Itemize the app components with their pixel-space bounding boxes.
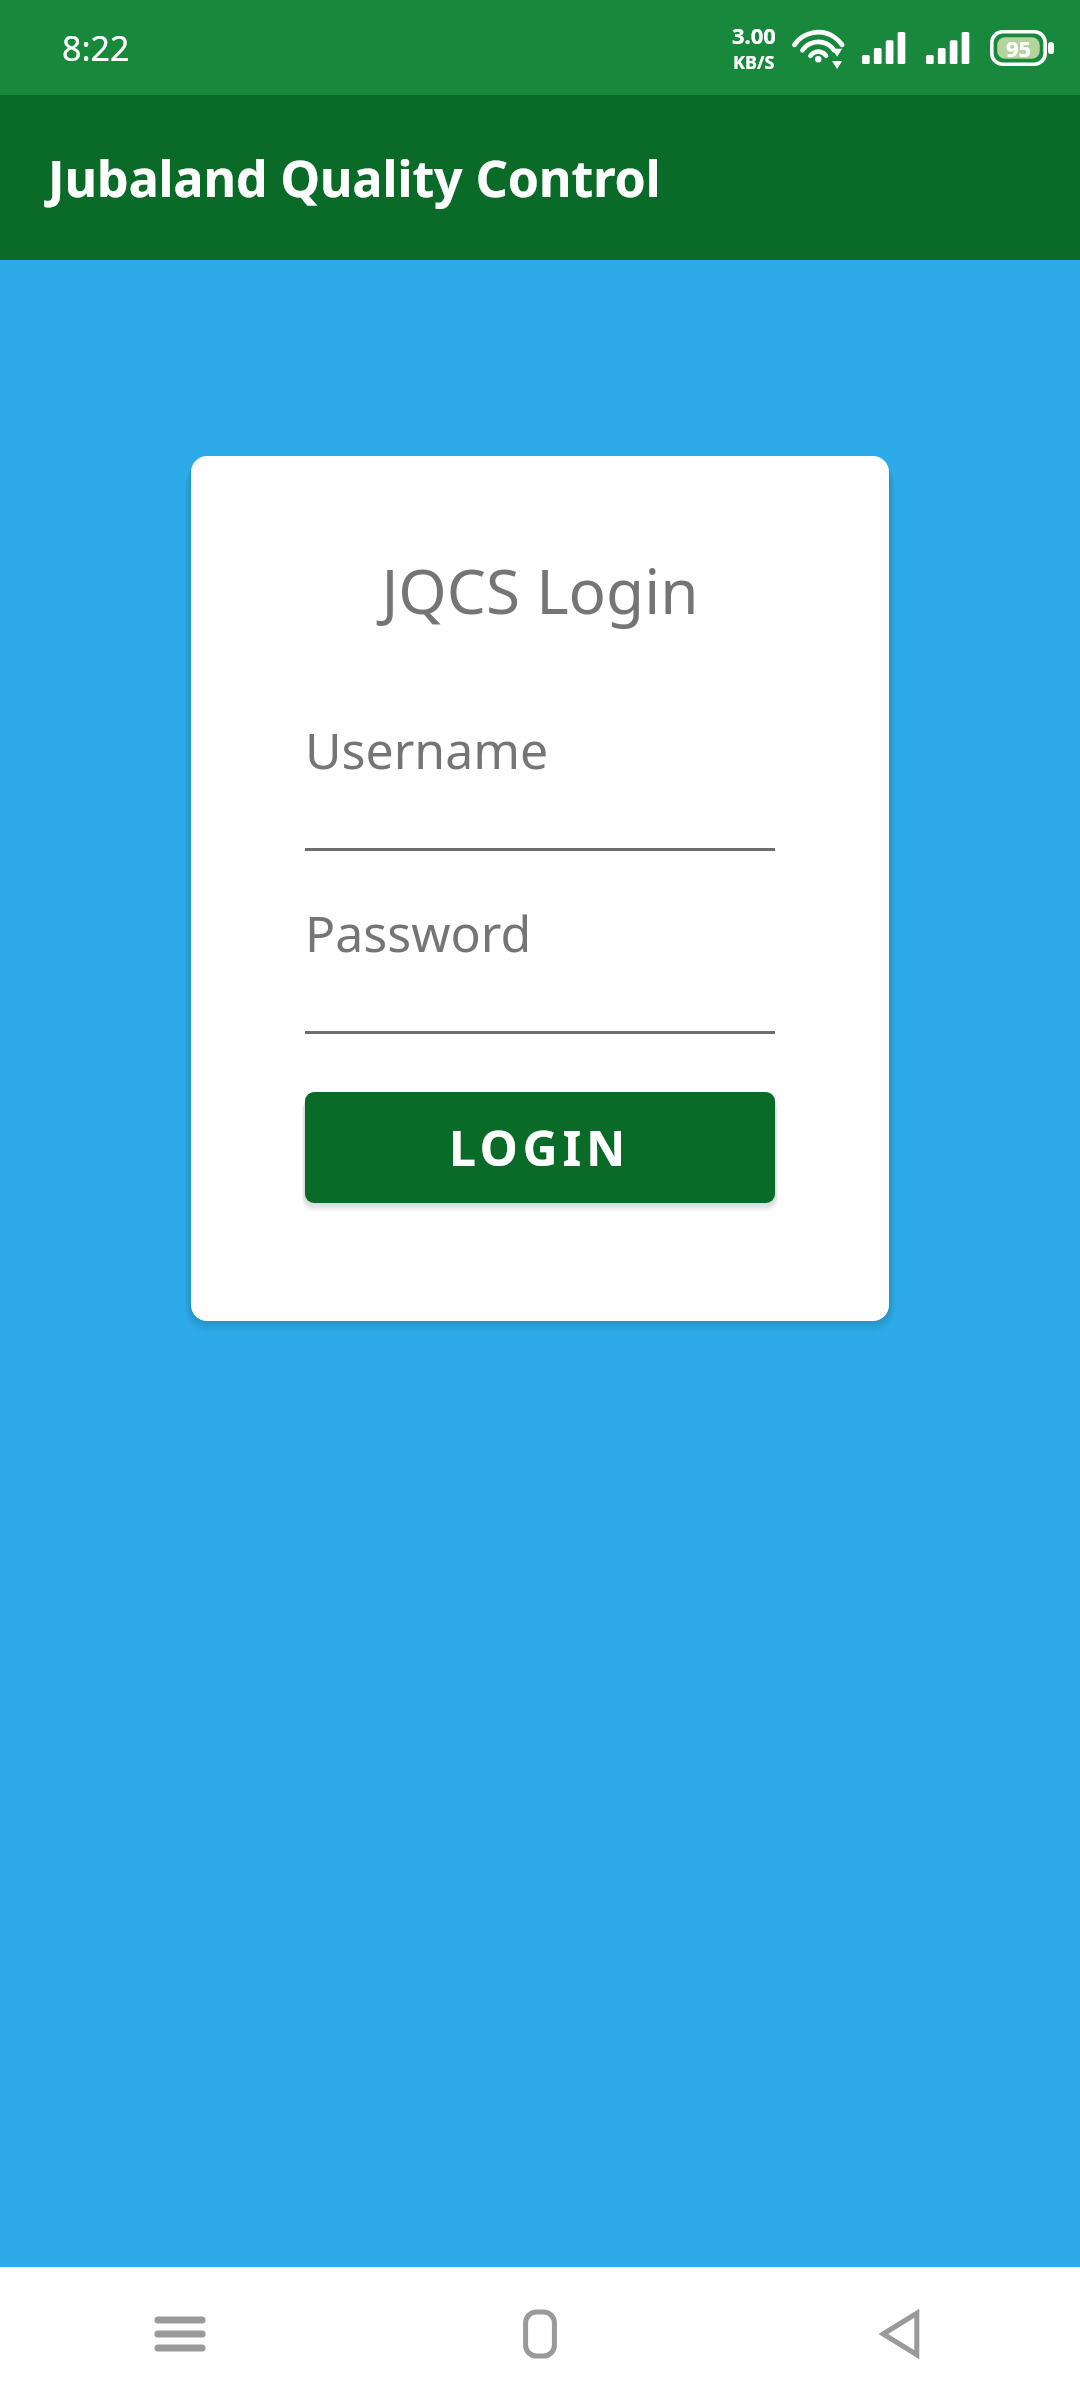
- staticText: LOGIN: [449, 1115, 631, 1180]
- staticText: 95: [1006, 33, 1032, 63]
- button[interactable]: Password: [305, 899, 775, 1034]
- staticText: 3.00: [732, 20, 776, 50]
- button[interactable]: Recent apps: [0, 2267, 360, 2400]
- staticText: Username: [305, 716, 549, 784]
- button[interactable]: Home: [360, 2267, 720, 2400]
- staticText: 8:22: [62, 25, 130, 71]
- staticText: KB/S: [733, 50, 775, 75]
- staticText: Jubaland Quality Control: [48, 144, 661, 212]
- button[interactable]: Back: [720, 2267, 1080, 2400]
- staticText: Password: [305, 899, 532, 967]
- button[interactable]: LOGIN: [305, 1092, 775, 1203]
- button[interactable]: Username: [305, 716, 775, 851]
- staticText: JQCS Login: [305, 548, 775, 632]
